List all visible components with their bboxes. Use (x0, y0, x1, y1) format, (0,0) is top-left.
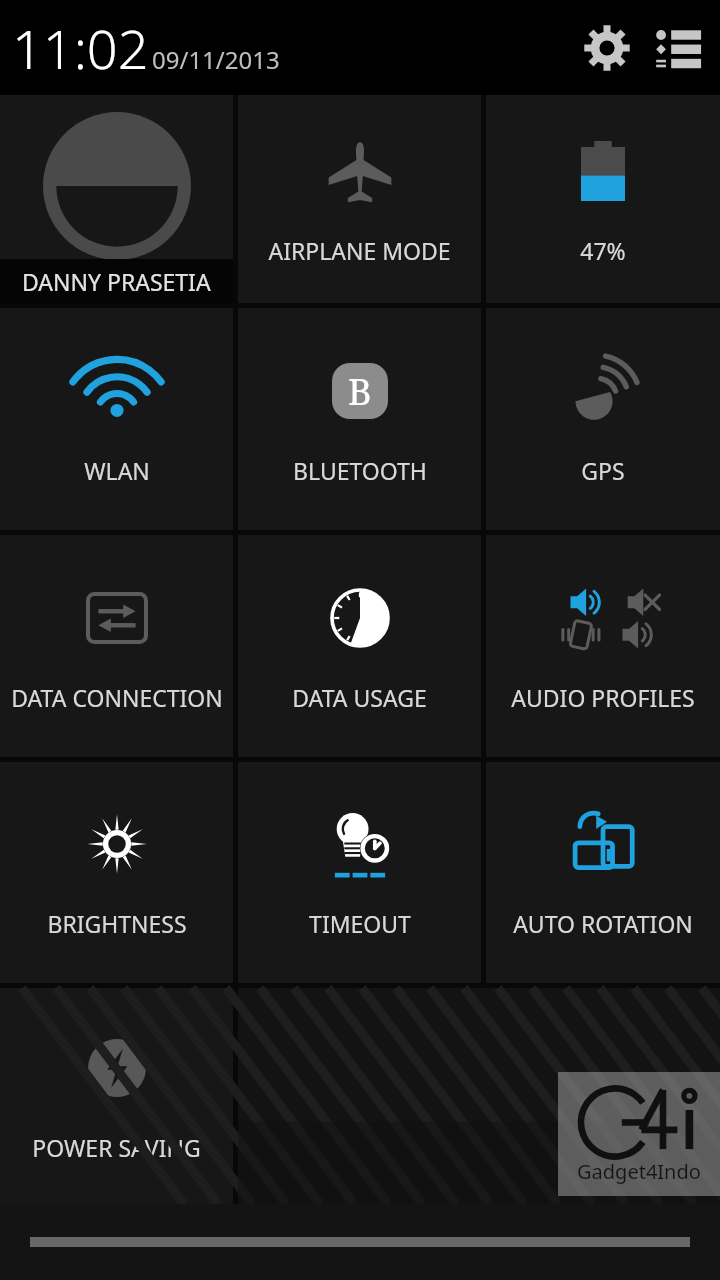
button[interactable]: GPS (486, 308, 720, 530)
button[interactable]: TIMEOUT (238, 762, 481, 983)
button[interactable]: B (238, 308, 481, 530)
staticText: 47% (580, 235, 626, 266)
staticText: B (348, 367, 372, 416)
button[interactable]: BRIGHTNESS (0, 762, 233, 983)
staticText: POWER SAVING (32, 1132, 201, 1163)
button[interactable]: Notifications (648, 17, 710, 79)
staticText: WLAN (84, 455, 150, 486)
staticText: 11:02 (12, 11, 149, 85)
button[interactable]: DANNY PRASETIA (0, 95, 233, 303)
button[interactable]: POWER SAVING (0, 988, 233, 1204)
button[interactable]: AUTO ROTATION (486, 762, 720, 983)
button[interactable]: AUDIO PROFILES (486, 535, 720, 757)
button[interactable]: AIRPLANE MODE (238, 95, 481, 303)
staticText: AUTO ROTATION (513, 908, 693, 939)
button[interactable]: DATA USAGE (238, 535, 481, 757)
staticText: BLUETOOTH (293, 455, 427, 486)
staticText: AUDIO PROFILES (511, 682, 695, 713)
staticText: DATA CONNECTION (11, 682, 223, 713)
staticText: GPS (581, 455, 625, 486)
staticText: Gadget4Indo (577, 1158, 701, 1185)
staticText: DANNY PRASETIA (22, 266, 211, 297)
staticText: 09/11/2013 (152, 43, 280, 76)
staticText: AIRPLANE MODE (268, 235, 451, 266)
staticText: TIMEOUT (309, 908, 411, 939)
button[interactable]: WLAN (0, 308, 233, 530)
button[interactable]: Settings (576, 17, 638, 79)
staticText: DATA USAGE (292, 682, 427, 713)
staticText: BRIGHTNESS (47, 908, 187, 939)
button[interactable]: 47% (486, 95, 720, 303)
button[interactable]: DATA CONNECTION (0, 535, 233, 757)
